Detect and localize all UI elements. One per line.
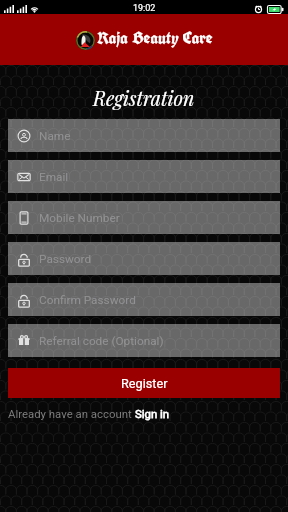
staticText: Confirm Password: [39, 293, 136, 307]
staticText: Sign in: [135, 407, 170, 420]
staticText: Mobile Number: [39, 211, 120, 225]
other: Raja Beauty Care logo: [76, 31, 95, 50]
staticText: Name: [39, 129, 71, 143]
button[interactable]: Mobile Number: [8, 201, 280, 234]
staticText: Email: [39, 170, 69, 184]
staticText: Raja Beauty Care: [97, 27, 213, 49]
button[interactable]: Referral code (Optional): [8, 324, 280, 357]
staticText: 19:02: [133, 3, 156, 14]
button[interactable]: Email: [8, 160, 280, 193]
staticText: Registration: [93, 85, 195, 111]
staticText: Register: [121, 376, 168, 391]
button[interactable]: Name: [8, 119, 280, 152]
staticText: Referral code (Optional): [39, 334, 164, 348]
button[interactable]: Confirm Password: [8, 283, 280, 316]
button[interactable]: Register: [8, 368, 280, 398]
button[interactable]: Password: [8, 242, 280, 275]
button[interactable]: Sign in: [135, 407, 170, 420]
staticText: Already have an account: [8, 407, 135, 420]
staticText: Password: [39, 252, 92, 266]
